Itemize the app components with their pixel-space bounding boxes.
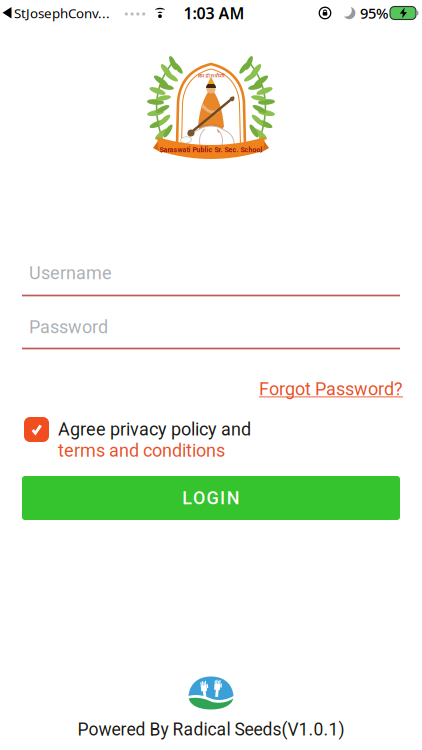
button[interactable]: Password	[22, 315, 414, 339]
button[interactable]: Forgot Password?	[259, 378, 403, 400]
button[interactable]: Back to StJosephConv	[2, 4, 110, 22]
staticText: terms and conditions	[58, 440, 225, 461]
staticText: Forgot Password?	[259, 378, 403, 400]
staticText: ज्ञान ही सर्वोपरि	[197, 72, 224, 79]
button[interactable]: Username	[22, 261, 414, 285]
staticText: Password	[29, 316, 108, 338]
staticText: Username	[29, 262, 112, 284]
staticText: Saraswati Public Sr. Sec. School	[159, 146, 262, 154]
staticText: Powered By Radical Seeds(V1.0.1)	[77, 719, 344, 740]
button[interactable]: LOGIN	[22, 476, 400, 520]
staticText: 95%	[360, 3, 388, 23]
staticText: Agree privacy policy and	[58, 419, 251, 440]
button[interactable]: terms and conditions	[58, 440, 225, 461]
staticText: LOGIN	[182, 487, 240, 509]
staticText: StJosephConv...	[14, 4, 110, 22]
button[interactable]: Agree to privacy policy and terms and co…	[24, 417, 49, 442]
staticText: 1:03 AM	[183, 2, 244, 24]
